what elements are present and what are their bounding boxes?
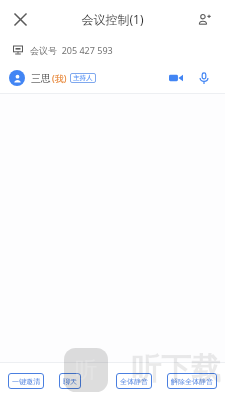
staticText: (我): [52, 72, 67, 84]
staticText: 解除全体静音: [171, 377, 213, 386]
staticText: 听: [75, 356, 97, 384]
button[interactable]: Close: [6, 5, 34, 33]
button[interactable]: Camera: [164, 66, 188, 90]
button[interactable]: Microphone: [192, 66, 216, 90]
staticText: 全体静音: [120, 377, 148, 386]
staticText: 会议控制(1): [81, 11, 144, 27]
staticText: 主持人: [73, 74, 93, 82]
staticText: 一键邀清: [12, 377, 40, 386]
staticText: 三思: [31, 72, 51, 85]
button[interactable]: 一键邀清: [8, 373, 44, 389]
button[interactable]: 三思: [0, 65, 225, 91]
button[interactable]: 解除全体静音: [167, 373, 217, 389]
staticText: 聊天: [63, 377, 77, 386]
button[interactable]: 会议号 205 427 593: [0, 38, 225, 62]
staticText: 会议号 205 427 593: [30, 44, 113, 56]
button[interactable]: 聊天: [59, 373, 81, 389]
staticText: 听下载: [131, 350, 221, 388]
button[interactable]: Add participant: [190, 5, 218, 33]
button[interactable]: 全体静音: [116, 373, 152, 389]
